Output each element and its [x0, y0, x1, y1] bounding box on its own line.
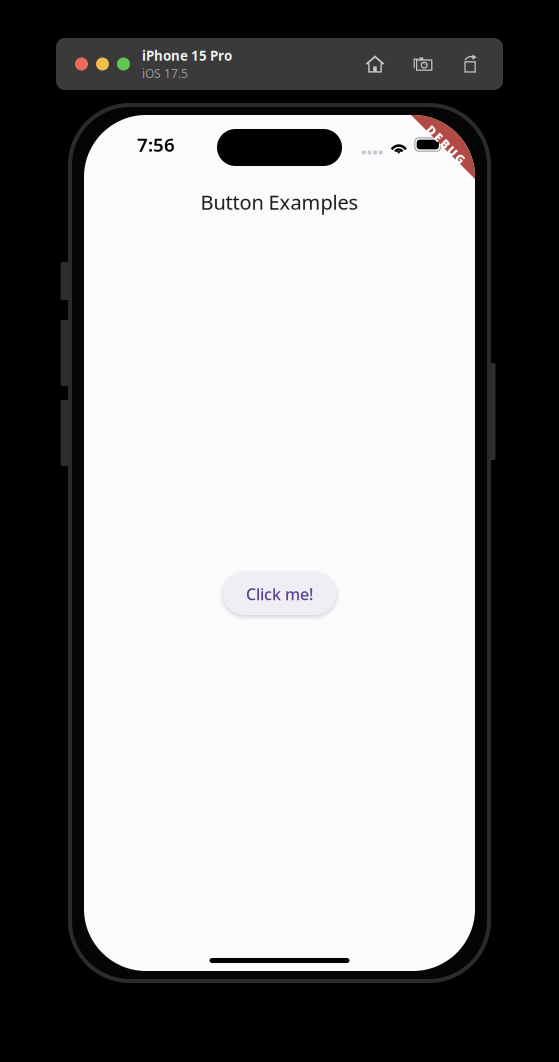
staticText: DEBUG [421, 136, 471, 152]
staticText: 7:56 [137, 132, 175, 157]
staticText: Button Examples [200, 189, 358, 215]
button[interactable]: Home [365, 54, 385, 74]
staticText: iOS 17.5 [142, 65, 188, 81]
button[interactable]: Screenshot [413, 54, 433, 74]
staticText: Click me! [246, 583, 313, 605]
button[interactable]: Rotate device [461, 54, 481, 74]
staticText: iPhone 15 Pro [142, 47, 232, 64]
button[interactable]: Click me! [223, 573, 336, 615]
